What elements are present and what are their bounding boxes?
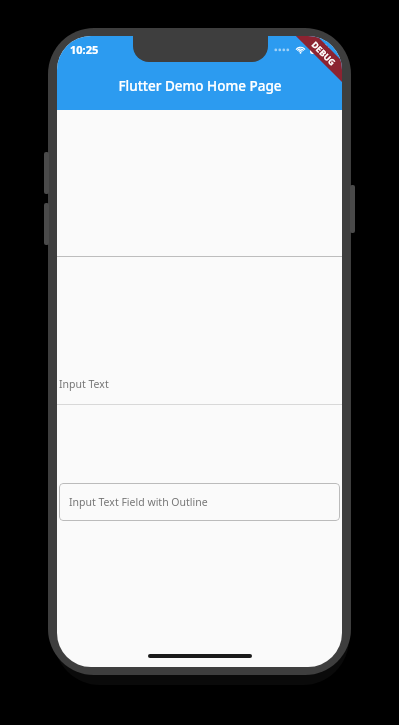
staticText: Input Text — [59, 377, 109, 391]
staticText: DEBUG — [309, 39, 338, 69]
button[interactable]: Input Text — [57, 364, 342, 404]
button[interactable]: Input Text Field with Outline — [59, 483, 340, 521]
staticText: Flutter Demo Home Page — [118, 77, 282, 95]
staticText: Input Text Field with Outline — [69, 495, 208, 509]
staticText: 10:25 — [70, 42, 99, 57]
